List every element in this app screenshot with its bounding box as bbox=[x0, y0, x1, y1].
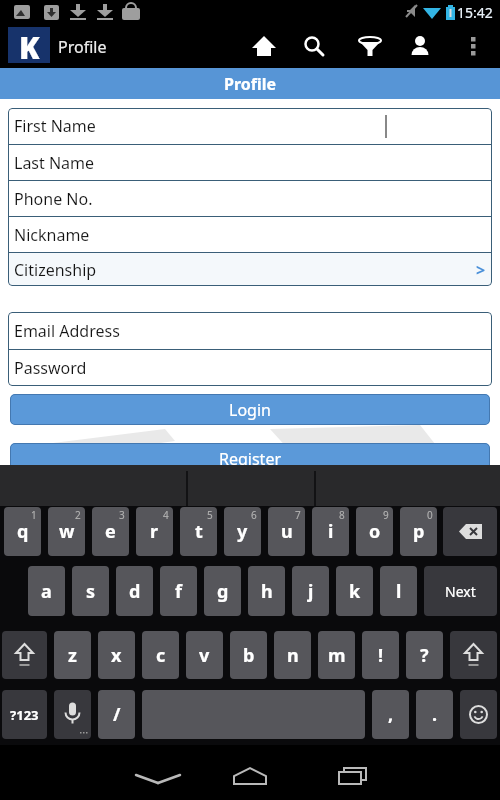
button[interactable]: Login bbox=[10, 394, 490, 425]
button[interactable] bbox=[240, 25, 288, 68]
staticText: f bbox=[175, 579, 182, 604]
staticText: ?123 bbox=[10, 706, 39, 724]
button[interactable] bbox=[2, 631, 47, 679]
button[interactable]: Phone No. bbox=[8, 181, 492, 216]
button[interactable]: Password bbox=[8, 350, 492, 386]
button[interactable]: w bbox=[48, 507, 85, 556]
staticText: 8 bbox=[339, 508, 345, 522]
button[interactable]: / bbox=[98, 690, 135, 739]
staticText: Password bbox=[14, 357, 87, 379]
button[interactable] bbox=[318, 745, 390, 800]
button[interactable]: o bbox=[356, 507, 393, 556]
button[interactable]: Nickname bbox=[8, 217, 492, 252]
staticText: h bbox=[261, 579, 273, 604]
button[interactable] bbox=[460, 690, 497, 739]
staticText: Next bbox=[445, 582, 476, 601]
staticText: > bbox=[476, 259, 486, 281]
button[interactable]: ?123 bbox=[2, 690, 47, 739]
button[interactable] bbox=[122, 745, 194, 800]
button[interactable]: d bbox=[116, 566, 153, 616]
staticText: Profile bbox=[224, 73, 277, 95]
staticText: t bbox=[195, 519, 203, 544]
staticText: K bbox=[19, 27, 40, 63]
button[interactable]: z bbox=[54, 631, 91, 679]
button[interactable] bbox=[450, 631, 497, 679]
staticText: . bbox=[432, 702, 438, 727]
staticText: v bbox=[199, 643, 210, 668]
button[interactable] bbox=[443, 507, 497, 556]
staticText: g bbox=[217, 579, 229, 604]
staticText: Citizenship bbox=[14, 259, 97, 281]
staticText: 2 bbox=[75, 508, 81, 522]
staticText: k bbox=[349, 579, 361, 604]
button[interactable]: h bbox=[248, 566, 285, 616]
staticText: x bbox=[111, 643, 122, 668]
button[interactable]: i bbox=[312, 507, 349, 556]
staticText: e bbox=[105, 519, 116, 544]
staticText: l bbox=[396, 579, 402, 604]
button[interactable]: Next bbox=[424, 566, 497, 616]
staticText: Nickname bbox=[14, 224, 90, 246]
staticText: b bbox=[243, 643, 255, 668]
button[interactable]: g bbox=[204, 566, 241, 616]
button[interactable]: v bbox=[186, 631, 223, 679]
button[interactable]: a bbox=[28, 566, 65, 616]
button[interactable]: x bbox=[98, 631, 135, 679]
button[interactable]: q bbox=[4, 507, 41, 556]
button[interactable]: j bbox=[292, 566, 329, 616]
staticText: 5 bbox=[207, 508, 213, 522]
staticText: Last Name bbox=[14, 152, 95, 174]
staticText: First Name bbox=[14, 115, 96, 137]
button[interactable]: . bbox=[416, 690, 453, 739]
staticText: 6 bbox=[251, 508, 257, 522]
button[interactable]: t bbox=[180, 507, 217, 556]
staticText: Email Address bbox=[14, 320, 120, 342]
staticText: 3 bbox=[119, 508, 125, 522]
staticText: Phone No. bbox=[14, 188, 93, 210]
button[interactable]: f bbox=[160, 566, 197, 616]
staticText: n bbox=[287, 643, 299, 668]
button[interactable] bbox=[214, 745, 286, 800]
staticText: i bbox=[328, 519, 334, 544]
staticText: / bbox=[113, 702, 121, 727]
button[interactable]: k bbox=[336, 566, 373, 616]
button[interactable]: c bbox=[142, 631, 179, 679]
button[interactable]: r bbox=[136, 507, 173, 556]
staticText: u bbox=[281, 519, 293, 544]
button[interactable]: Email Address bbox=[8, 312, 492, 349]
button[interactable]: Last Name bbox=[8, 145, 492, 180]
button[interactable] bbox=[451, 25, 495, 68]
button[interactable]: l bbox=[380, 566, 417, 616]
staticText: Register bbox=[219, 448, 282, 465]
button[interactable]: ? bbox=[406, 631, 443, 679]
button[interactable] bbox=[346, 25, 394, 68]
staticText: 7 bbox=[295, 508, 301, 522]
staticText: y bbox=[237, 519, 248, 544]
button[interactable] bbox=[396, 25, 444, 68]
staticText: ! bbox=[378, 643, 384, 668]
staticText: s bbox=[86, 579, 96, 604]
button[interactable]: m bbox=[318, 631, 355, 679]
staticText: ? bbox=[420, 643, 429, 668]
button[interactable]: e bbox=[92, 507, 129, 556]
staticText: 1 bbox=[31, 508, 37, 522]
button[interactable]: b bbox=[230, 631, 267, 679]
button[interactable]: ! bbox=[362, 631, 399, 679]
button[interactable]: n bbox=[274, 631, 311, 679]
staticText: , bbox=[388, 702, 394, 727]
staticText: 4 bbox=[163, 508, 169, 522]
button[interactable]: Citizenship bbox=[8, 253, 492, 286]
button[interactable]: , bbox=[372, 690, 409, 739]
button[interactable]: K bbox=[8, 27, 50, 63]
button[interactable]: y bbox=[224, 507, 261, 556]
staticText: 9 bbox=[383, 508, 389, 522]
button[interactable]: Register bbox=[10, 443, 490, 465]
button[interactable]: p bbox=[400, 507, 437, 556]
button[interactable] bbox=[290, 25, 338, 68]
button[interactable]: u bbox=[268, 507, 305, 556]
staticText: d bbox=[129, 579, 141, 604]
button[interactable]: First Name bbox=[8, 108, 492, 144]
button[interactable] bbox=[54, 690, 91, 739]
button[interactable]: s bbox=[72, 566, 109, 616]
